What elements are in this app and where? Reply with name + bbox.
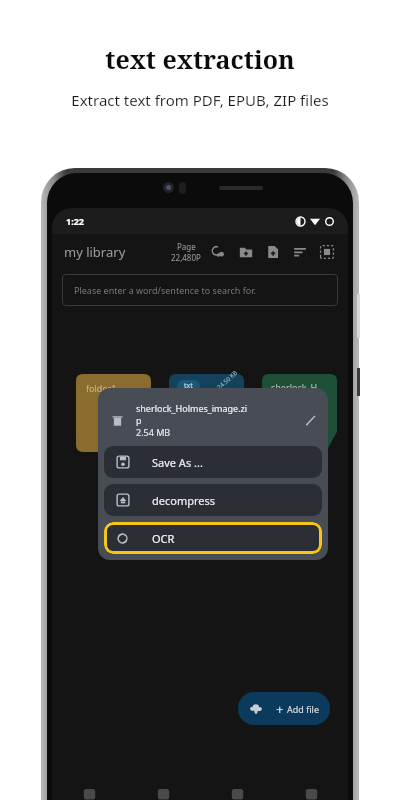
staticText: s H	[177, 464, 184, 488]
staticText: folder1	[86, 382, 117, 394]
staticText: text extraction	[105, 42, 295, 76]
staticText: my library	[64, 243, 126, 261]
staticText: Add file	[287, 703, 319, 715]
button[interactable]: Save As ...	[104, 446, 322, 478]
staticText: Page	[177, 241, 196, 252]
other: Delete	[104, 407, 130, 433]
button[interactable]: decompress	[104, 484, 322, 516]
button[interactable]: Settings	[274, 786, 348, 800]
staticText: OCR	[152, 531, 175, 546]
staticText: 2.54 MB	[136, 426, 171, 438]
staticText: 현진건-운수_좋 은_날-개벽-공유	[177, 406, 241, 431]
button[interactable]: txt	[169, 374, 244, 452]
button[interactable]: Library	[52, 786, 126, 800]
staticText: decompress	[152, 493, 216, 508]
staticText: 1:22	[66, 215, 84, 227]
button[interactable]: Select	[318, 243, 336, 261]
staticText: Please enter a word/sentence to search f…	[74, 284, 256, 296]
button[interactable]: OCR	[104, 522, 322, 554]
staticText: 0.60%	[177, 395, 200, 406]
staticText: Save As ...	[152, 455, 203, 470]
button[interactable]: folder1	[76, 374, 151, 452]
staticText: sherlock_H olmes_ima ge	[271, 381, 318, 417]
staticText: Extract text from PDF, EPUB, ZIP files	[71, 90, 329, 110]
button[interactable]: +	[238, 692, 330, 725]
button[interactable]: sherlock_H olmes_ima ge	[262, 374, 337, 452]
other: Rename	[298, 408, 322, 432]
button[interactable]: Delete	[104, 394, 322, 446]
button[interactable]: Reader	[126, 786, 200, 800]
button[interactable]: Search	[200, 786, 274, 800]
button[interactable]: New file	[264, 243, 282, 261]
button[interactable]: Cloud sync	[210, 243, 228, 261]
staticText: txt	[184, 381, 193, 391]
staticText: 24.50 KB	[215, 369, 239, 391]
staticText: +	[276, 700, 284, 718]
button[interactable]: Sort	[291, 243, 309, 261]
staticText: sherlock_Holmes_image.zi p	[136, 402, 248, 426]
button[interactable]: New folder	[237, 243, 255, 261]
staticText: 22,480P	[171, 252, 201, 263]
button[interactable]: Please enter a word/sentence to search f…	[62, 274, 338, 306]
button[interactable]: s H	[169, 458, 244, 536]
